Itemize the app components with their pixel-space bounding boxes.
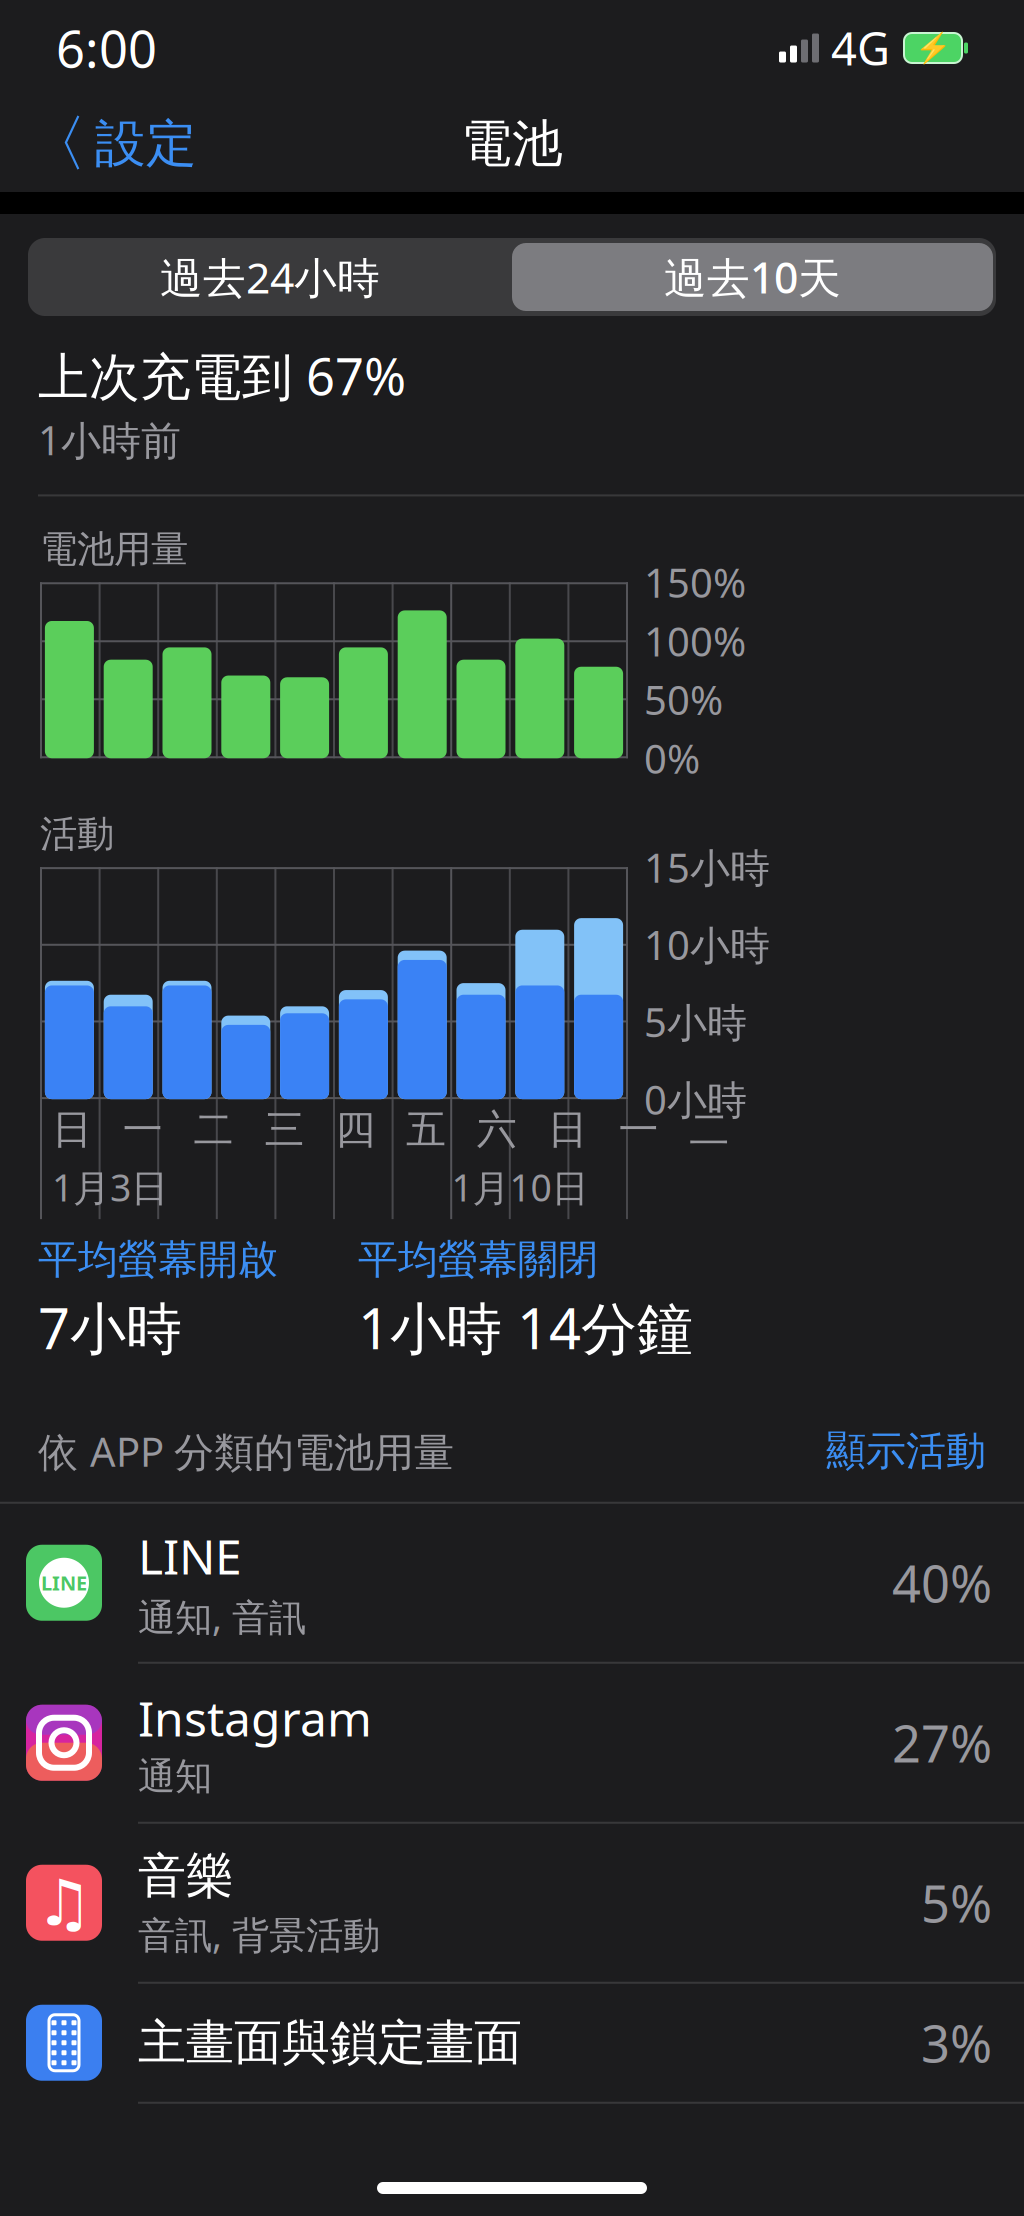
staticText: 0小時 bbox=[644, 1073, 747, 1126]
staticText: 電池用量 bbox=[40, 526, 188, 572]
staticText: 音訊, 背景活動 bbox=[138, 1909, 380, 1959]
staticText: 50% bbox=[644, 673, 723, 726]
button[interactable]: 過去24小時 bbox=[28, 241, 512, 313]
button[interactable]: LINE bbox=[0, 1504, 1024, 1662]
staticText: 100% bbox=[644, 614, 746, 667]
staticText: 電池 bbox=[461, 113, 563, 175]
button[interactable]: Instagram bbox=[0, 1664, 1024, 1822]
button[interactable]: ♫ bbox=[0, 1824, 1024, 1982]
staticText: 150% bbox=[644, 556, 746, 609]
staticText: 音樂 bbox=[138, 1846, 234, 1905]
staticText: 1小時 14分鐘 bbox=[358, 1290, 693, 1365]
staticText: 依 APP 分類的電池用量 bbox=[38, 1425, 454, 1478]
staticText: 40% bbox=[892, 1549, 992, 1616]
staticText: 7小時 bbox=[38, 1290, 182, 1365]
staticText: LINE bbox=[138, 1524, 242, 1588]
staticText: 日 bbox=[548, 1105, 588, 1154]
staticText: 3% bbox=[921, 2009, 992, 2076]
staticText: 六 bbox=[477, 1105, 517, 1154]
staticText: 二 bbox=[689, 1105, 729, 1154]
staticText: 四 bbox=[335, 1105, 375, 1154]
button[interactable]: 〈 bbox=[8, 96, 215, 192]
staticText: ♫ bbox=[35, 1866, 92, 1939]
button[interactable]: 顯示活動 bbox=[810, 1419, 986, 1484]
staticText: 1月10日 bbox=[452, 1162, 589, 1212]
button[interactable]: 過去10天 bbox=[512, 240, 996, 314]
staticText: 通知 bbox=[138, 1754, 212, 1800]
button[interactable]: 主畫面與鎖定畫面 bbox=[0, 1984, 1024, 2102]
staticText: ⚡ bbox=[914, 31, 951, 65]
staticText: 1月3日 bbox=[52, 1162, 168, 1212]
staticText: 通知, 音訊 bbox=[138, 1592, 306, 1641]
staticText: 過去10天 bbox=[664, 249, 841, 305]
staticText: 上次充電到 67% bbox=[38, 342, 406, 409]
staticText: 日 bbox=[52, 1105, 92, 1154]
staticText: 15小時 bbox=[644, 841, 770, 894]
staticText: 5% bbox=[921, 1869, 992, 1936]
staticText: 1小時前 bbox=[38, 413, 181, 466]
staticText: 過去24小時 bbox=[160, 249, 380, 305]
staticText: 三 bbox=[264, 1105, 304, 1154]
staticText: 設定 bbox=[95, 113, 197, 175]
staticText: 5小時 bbox=[644, 995, 747, 1048]
staticText: 10小時 bbox=[644, 918, 770, 971]
staticText: 平均螢幕開啟 bbox=[38, 1235, 278, 1284]
staticText: 顯示活動 bbox=[826, 1427, 986, 1476]
staticText: Instagram bbox=[138, 1686, 372, 1750]
staticText: 二 bbox=[194, 1105, 234, 1154]
staticText: 6:00 bbox=[56, 14, 157, 82]
staticText: 主畫面與鎖定畫面 bbox=[138, 2013, 522, 2072]
staticText: 27% bbox=[892, 1709, 992, 1776]
staticText: 一 bbox=[123, 1105, 163, 1154]
staticText: 平均螢幕關閉 bbox=[358, 1235, 598, 1284]
staticText: 活動 bbox=[40, 811, 114, 857]
staticText: 一 bbox=[618, 1105, 658, 1154]
staticText: 0% bbox=[644, 732, 700, 785]
staticText: LINE bbox=[41, 1569, 87, 1596]
staticText: 〈 bbox=[26, 106, 87, 182]
staticText: 4G bbox=[831, 18, 890, 78]
staticText: 五 bbox=[406, 1105, 446, 1154]
